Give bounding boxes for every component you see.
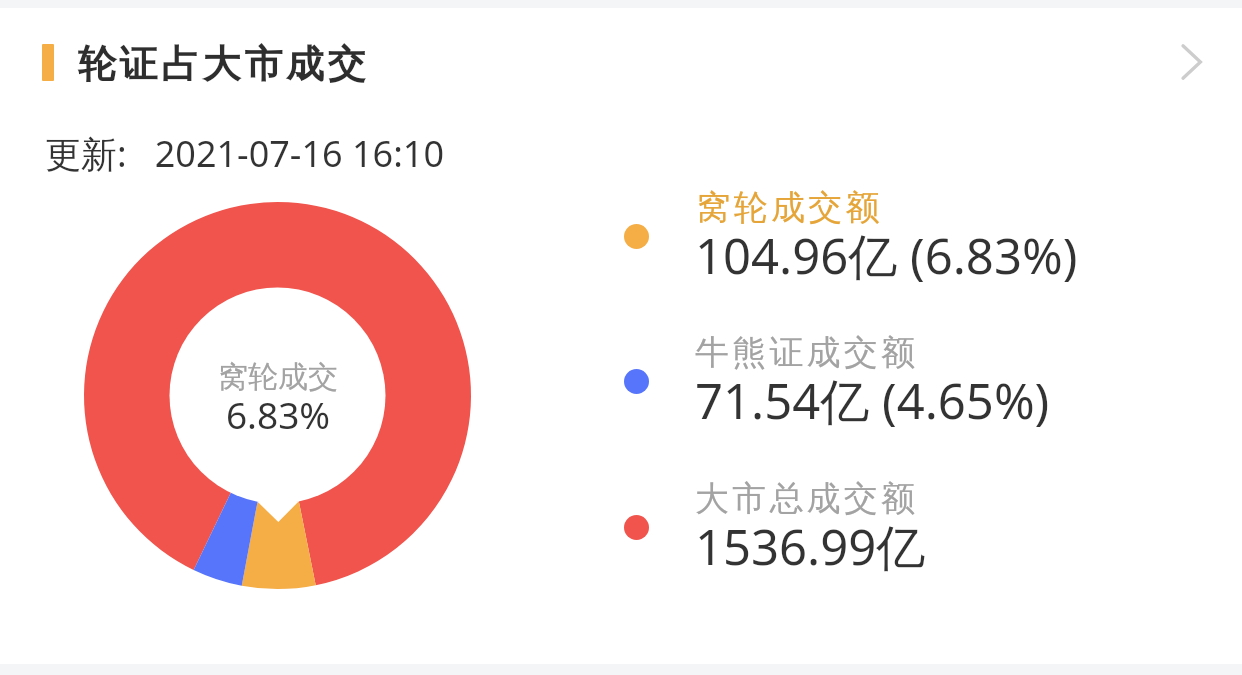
- staticText: 牛熊证成交额: [695, 331, 919, 374]
- button[interactable]: 牛熊证成交额: [608, 325, 1128, 439]
- staticText: 大市总成交额: [695, 477, 919, 520]
- button[interactable]: 大市总成交额: [608, 471, 1128, 585]
- staticText: 窝轮成交: [168, 358, 388, 396]
- staticText: 104.96亿 (6.83%): [695, 222, 1078, 289]
- button[interactable]: Open details: [1156, 28, 1228, 100]
- staticText: 71.54亿 (4.65%): [695, 367, 1050, 434]
- staticText: 1536.99亿: [695, 513, 926, 580]
- staticText: 窝轮成交额: [695, 186, 881, 229]
- staticText: 6.83%: [168, 389, 388, 439]
- button[interactable]: 窝轮成交额: [608, 180, 1128, 294]
- staticText: 轮证占大市成交: [78, 40, 370, 88]
- button[interactable]: 轮证占大市成交: [0, 8, 1242, 120]
- staticText: 更新: 2021-07-16 16:10: [45, 129, 445, 178]
